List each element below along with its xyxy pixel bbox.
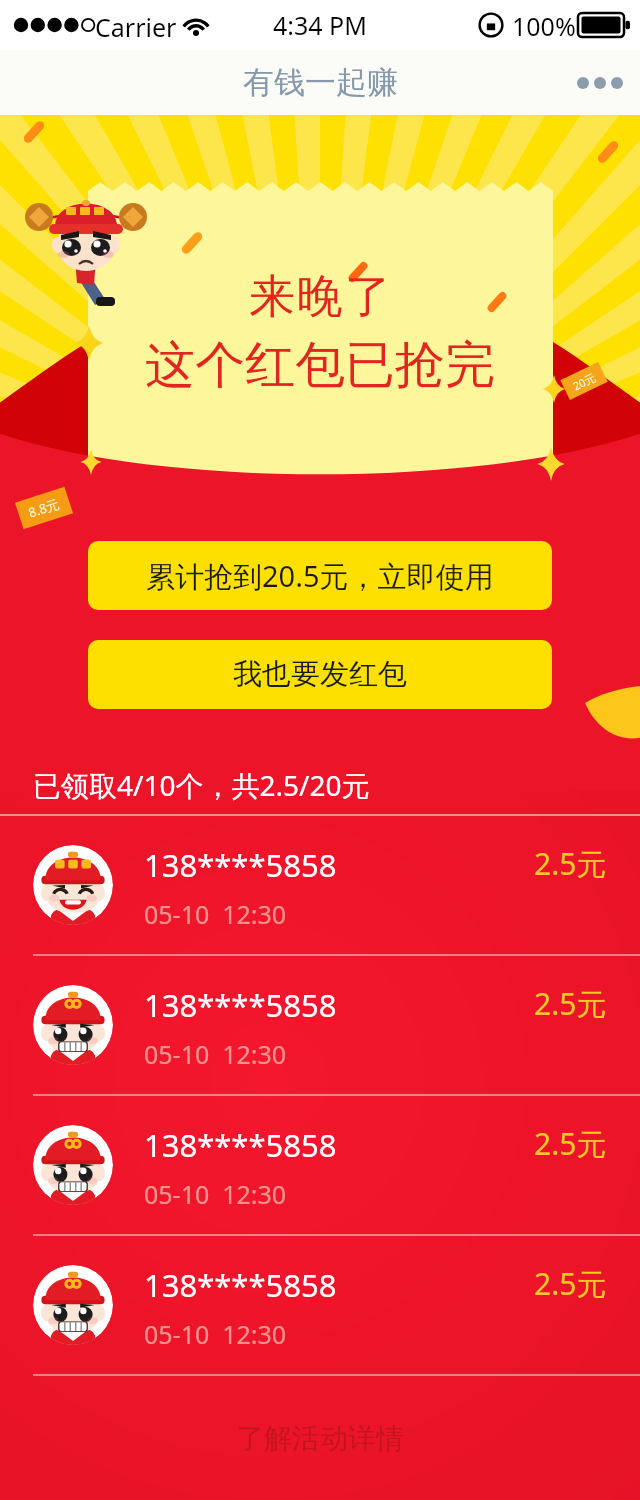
staticText: 138****5858 [144, 984, 337, 1026]
button[interactable]: 138****5858 [0, 816, 640, 954]
staticText: 这个红包已抢完 [145, 334, 495, 397]
staticText: 2.5元 [534, 843, 607, 884]
staticText: 138****5858 [144, 1124, 337, 1166]
staticText: 2.5元 [534, 1123, 607, 1164]
staticText: 4:34 PM [273, 8, 367, 42]
staticText: 2.5元 [534, 1263, 607, 1304]
staticText: 我也要发红包 [233, 656, 407, 693]
button[interactable]: 了解活动详情 [236, 1421, 404, 1456]
staticText: 138****5858 [144, 1264, 337, 1306]
staticText: 05-10 12:30 [144, 1317, 287, 1351]
staticText: Carrier [95, 10, 177, 44]
button[interactable]: 138****5858 [0, 956, 640, 1094]
button[interactable]: 我也要发红包 [88, 640, 552, 709]
staticText: 05-10 12:30 [144, 1037, 287, 1071]
button[interactable]: More options [570, 53, 630, 113]
staticText: 已领取4/10个，共2.5/20元 [33, 766, 370, 804]
button[interactable]: 138****5858 [0, 1236, 640, 1374]
staticText: 138****5858 [144, 844, 337, 886]
staticText: 100% [512, 9, 576, 43]
staticText: 有钱一起赚 [243, 63, 398, 102]
button[interactable]: 138****5858 [0, 1096, 640, 1234]
staticText: 05-10 12:30 [144, 1177, 287, 1211]
staticText: 05-10 12:30 [144, 897, 287, 931]
button[interactable]: 累计抢到20.5元，立即使用 [88, 541, 552, 610]
staticText: 累计抢到20.5元，立即使用 [146, 556, 494, 596]
staticText: 2.5元 [534, 983, 607, 1024]
staticText: 来晚了 [248, 268, 392, 326]
staticText: 8.8元 [26, 494, 62, 521]
staticText: 20元 [570, 369, 598, 393]
